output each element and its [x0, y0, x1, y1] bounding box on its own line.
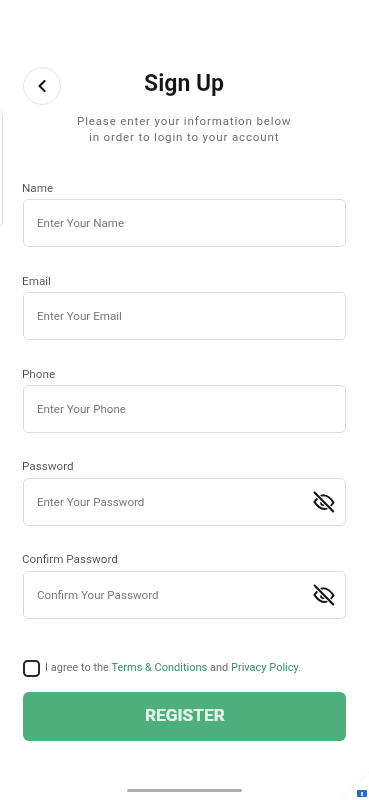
- staticText: Please enter your information below: [77, 114, 292, 128]
- staticText: Confirm Your Password: [37, 588, 159, 602]
- button[interactable]: Enter Your Phone: [23, 385, 346, 433]
- button[interactable]: Agree to terms: [23, 660, 40, 677]
- staticText: Enter Your Email: [37, 309, 122, 323]
- button[interactable]: Enter Your Email: [23, 292, 346, 340]
- staticText: Enter Your Password: [37, 495, 145, 509]
- staticText: Phone: [22, 367, 56, 381]
- staticText: Sign Up: [144, 70, 225, 97]
- staticText: Email: [22, 274, 51, 288]
- button[interactable]: Enter Your Password: [23, 478, 346, 526]
- staticText: REGISTER: [145, 705, 225, 725]
- staticText: Enter Your Name: [37, 216, 125, 230]
- button[interactable]: I agree to the Terms & Conditions and Pr…: [45, 661, 302, 674]
- staticText: Password: [22, 459, 74, 473]
- button[interactable]: Back: [23, 67, 61, 105]
- staticText: Confirm Password: [22, 552, 118, 566]
- staticText: Enter Your Phone: [37, 402, 127, 416]
- button[interactable]: Enter Your Name: [23, 199, 346, 247]
- staticText: Name: [22, 181, 54, 195]
- button[interactable]: Show password: [310, 488, 338, 516]
- button[interactable]: Show password: [310, 581, 338, 609]
- button[interactable]: Confirm Your Password: [23, 571, 346, 619]
- button[interactable]: REGISTER: [23, 692, 346, 741]
- staticText: in order to login to your account: [89, 130, 280, 144]
